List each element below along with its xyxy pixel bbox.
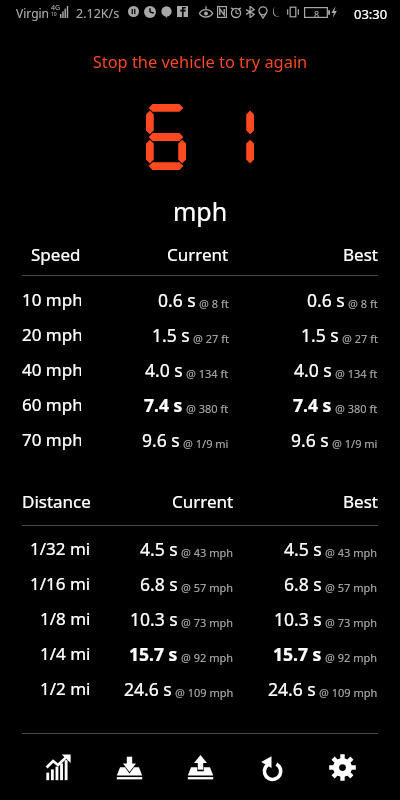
staticText: 4.5 s bbox=[284, 537, 322, 561]
staticText: 8 bbox=[314, 8, 320, 20]
staticText: Best bbox=[343, 490, 378, 513]
staticText: 60 mph bbox=[22, 393, 81, 416]
button[interactable]: Export bbox=[165, 734, 236, 800]
staticText: 10.3 s bbox=[274, 607, 322, 631]
staticText: 1/2 mi bbox=[40, 677, 91, 700]
staticText: 6.8 s bbox=[284, 572, 322, 596]
staticText: @ 92 mph bbox=[325, 650, 378, 665]
staticText: 1/4 mi bbox=[40, 642, 91, 665]
staticText: @ 92 mph bbox=[181, 650, 234, 665]
staticText: @ 380 ft bbox=[335, 401, 378, 416]
staticText: @ 57 mph bbox=[181, 580, 234, 595]
staticText: 40 mph bbox=[22, 358, 81, 381]
staticText: Current bbox=[167, 243, 229, 266]
staticText: 1/8 mi bbox=[40, 607, 91, 630]
staticText: @ 109 mph bbox=[319, 685, 378, 700]
button[interactable]: Reset bbox=[236, 734, 307, 800]
staticText: 10 mph bbox=[22, 288, 81, 311]
staticText: Current bbox=[172, 490, 234, 513]
staticText: @ 109 mph bbox=[175, 685, 234, 700]
staticText: @ 43 mph bbox=[181, 545, 234, 560]
staticText: Distance bbox=[22, 490, 91, 513]
staticText: 15.7 s bbox=[273, 642, 322, 666]
staticText: 24.6 s bbox=[268, 677, 316, 701]
staticText: 1/16 mi bbox=[30, 572, 91, 595]
staticText: 0.6 s bbox=[307, 288, 345, 312]
staticText: 03:30 bbox=[354, 5, 388, 23]
staticText: 15.7 s bbox=[129, 642, 178, 666]
staticText: 7.4 s bbox=[144, 393, 183, 417]
staticText: 1/32 mi bbox=[30, 537, 91, 560]
staticText: 6.8 s bbox=[140, 572, 178, 596]
staticText: 0.6 s bbox=[158, 288, 196, 312]
button[interactable]: Settings bbox=[307, 734, 378, 800]
staticText: @ 1/9 mi bbox=[183, 436, 229, 451]
staticText: Best bbox=[343, 243, 378, 266]
staticText: @ 43 mph bbox=[325, 545, 378, 560]
staticText: @ 73 mph bbox=[181, 615, 234, 630]
staticText: 4.5 s bbox=[140, 537, 178, 561]
staticText: 20 mph bbox=[22, 323, 81, 346]
staticText: @ 8 ft bbox=[348, 296, 378, 311]
staticText: 9.6 s bbox=[291, 428, 329, 452]
staticText: 4.0 s bbox=[294, 358, 332, 382]
staticText: @ 57 mph bbox=[325, 580, 378, 595]
staticText: 24.6 s bbox=[124, 677, 172, 701]
staticText: 2.12K/s bbox=[76, 5, 120, 22]
staticText: 9.6 s bbox=[142, 428, 180, 452]
staticText: @ 73 mph bbox=[325, 615, 378, 630]
staticText: 1.5 s bbox=[301, 323, 339, 347]
staticText: @ 134 ft bbox=[186, 366, 229, 381]
staticText: @ 380 ft bbox=[186, 401, 229, 416]
staticText: Virgin bbox=[16, 5, 50, 21]
staticText: @ 27 ft bbox=[193, 331, 229, 346]
staticText: @ 134 ft bbox=[335, 366, 378, 381]
staticText: 10.3 s bbox=[130, 607, 178, 631]
button[interactable]: Import bbox=[94, 734, 165, 800]
staticText: 4.0 s bbox=[145, 358, 183, 382]
staticText: @ 27 ft bbox=[342, 331, 378, 346]
staticText: 70 mph bbox=[22, 428, 81, 451]
staticText: 4G bbox=[51, 3, 61, 13]
staticText: 1.5 s bbox=[152, 323, 190, 347]
staticText: 7.4 s bbox=[293, 393, 332, 417]
staticText: mph bbox=[0, 194, 400, 228]
staticText: Stop the vehicle to try again bbox=[0, 50, 400, 72]
button[interactable]: Statistics bbox=[22, 734, 94, 800]
staticText: 10 bbox=[51, 11, 57, 18]
staticText: Speed bbox=[31, 243, 81, 266]
staticText: @ 8 ft bbox=[199, 296, 229, 311]
staticText: @ 1/9 mi bbox=[332, 436, 378, 451]
